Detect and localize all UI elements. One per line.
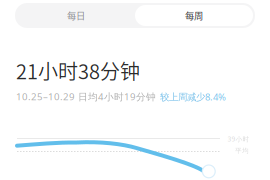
- staticText: 每周: [185, 9, 203, 22]
- staticText: 每日: [67, 9, 85, 22]
- button[interactable]: 每日: [17, 5, 135, 26]
- staticText: 21小时38分钟: [16, 56, 140, 85]
- staticText: 较上周减少8.4%: [160, 90, 226, 103]
- button[interactable]: 每周: [135, 5, 253, 26]
- staticText: 10.25–10.29 日均4小时19分钟: [16, 90, 156, 103]
- staticText: 平均: [235, 147, 249, 155]
- staticText: 39小时: [227, 134, 249, 143]
